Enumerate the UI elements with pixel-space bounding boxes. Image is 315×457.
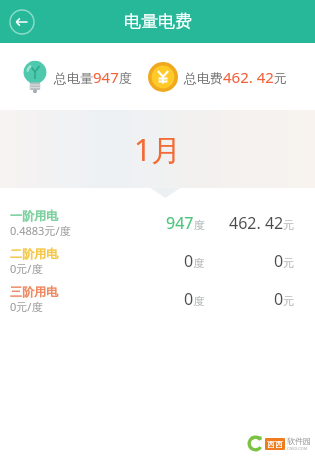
staticText: 电量电费	[124, 11, 192, 32]
staticText: 软件园	[287, 436, 311, 446]
button[interactable]: 三阶用电	[0, 280, 315, 318]
staticText: 0元/度	[10, 299, 43, 314]
staticText: 0元	[274, 250, 295, 272]
staticText: 一阶用电	[10, 208, 58, 223]
staticText: 总电费462. 42元	[184, 67, 287, 87]
staticText: 0度	[184, 250, 205, 272]
staticText: 0.4883元/度	[10, 223, 71, 238]
staticText: 西西	[267, 439, 283, 449]
staticText: 二阶用电	[10, 246, 58, 261]
staticText: 0度	[184, 288, 205, 310]
staticText: 总电量947度	[54, 67, 132, 87]
staticText: 947度	[166, 212, 205, 234]
staticText: 1月	[134, 129, 182, 170]
staticText: CNXX.COM	[287, 446, 308, 451]
staticText: 0元	[274, 288, 295, 310]
button[interactable]: Back	[9, 9, 35, 35]
button[interactable]: 一阶用电	[0, 204, 315, 242]
staticText: 462. 42元	[229, 212, 295, 234]
button[interactable]: 二阶用电	[0, 242, 315, 280]
staticText: 三阶用电	[10, 284, 58, 299]
staticText: 0元/度	[10, 261, 43, 276]
